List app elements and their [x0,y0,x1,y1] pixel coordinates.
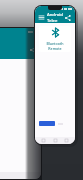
button[interactable]: Navigation 2 [64,138,69,143]
staticText: Bluetooth [46,41,64,46]
button[interactable]: Share [64,14,72,22]
button[interactable]: Navigation 1 [53,138,58,143]
button[interactable]: Menu [38,14,45,21]
button[interactable]: Navigation 0 [41,138,46,143]
button[interactable]: Share [28,45,38,55]
staticText: Android Telee Remote [47,12,64,23]
button[interactable]: Connect [39,121,55,126]
staticText: Remote [48,46,62,51]
button[interactable]: Bluetooth [39,26,71,52]
